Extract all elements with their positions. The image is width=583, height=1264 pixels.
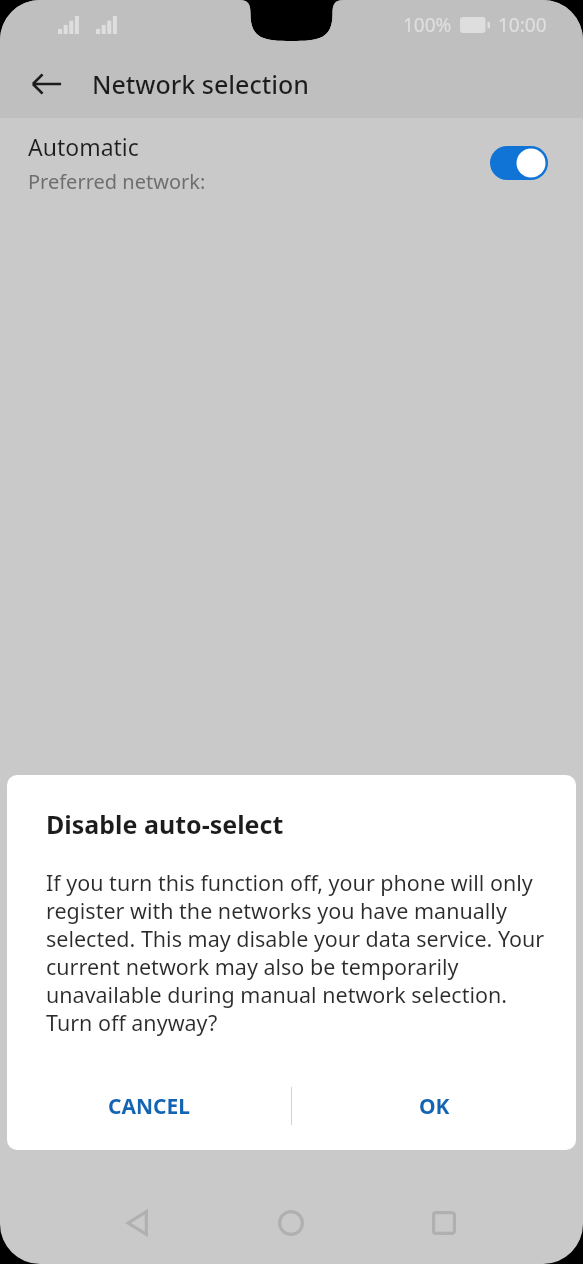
staticText: Automatic — [28, 131, 139, 162]
button[interactable]: Automatic — [0, 118, 583, 208]
staticText: CANCEL — [108, 1092, 191, 1121]
button[interactable]: Automatic network selection toggle — [490, 146, 548, 180]
button[interactable]: OK — [292, 1068, 576, 1144]
staticText: Preferred network: — [28, 168, 206, 195]
button[interactable]: Back — [110, 1195, 166, 1251]
button[interactable]: Back — [22, 59, 72, 109]
button[interactable]: Home — [263, 1195, 319, 1251]
button[interactable]: CANCEL — [7, 1068, 291, 1144]
staticText: Disable auto-select — [46, 807, 284, 841]
staticText: 10:00 — [498, 12, 547, 38]
staticText: Network selection — [92, 67, 309, 101]
staticText: OK — [419, 1092, 450, 1121]
staticText: 100% — [403, 12, 452, 38]
button[interactable]: Recent apps — [416, 1195, 472, 1251]
staticText: If you turn this function off, your phon… — [46, 868, 546, 1038]
